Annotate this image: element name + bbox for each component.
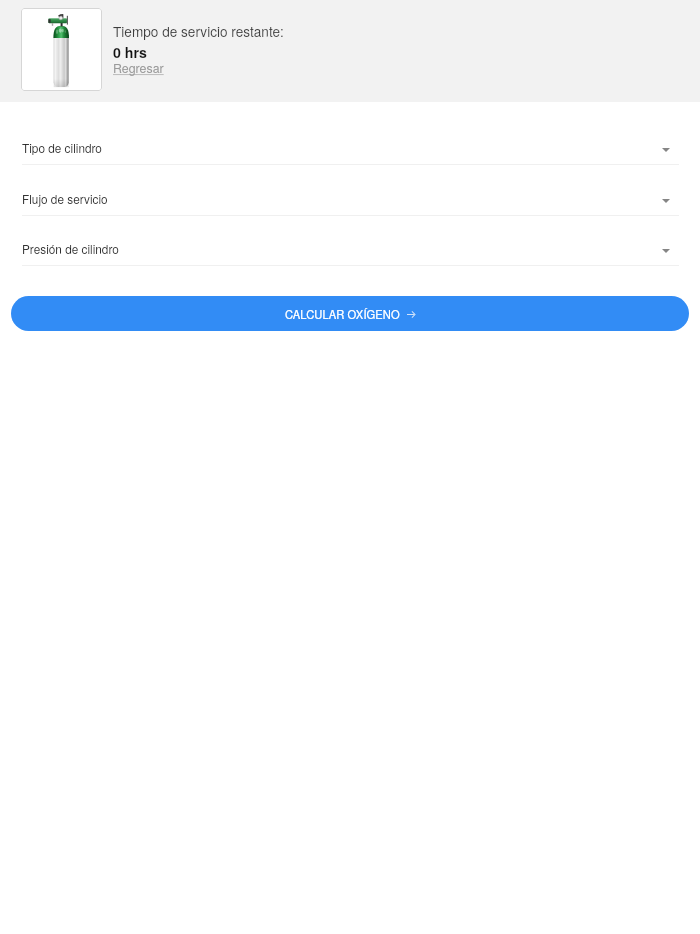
staticText: Tipo de cilindro [22, 139, 102, 156]
staticText: 0 hrs [113, 42, 147, 62]
button[interactable]: Presión de cilindro [0, 230, 700, 266]
other: Abrir selector Flujo de servicio [662, 199, 670, 203]
staticText: Regresar [113, 59, 164, 77]
button[interactable]: CALCULAR OXÍGENO [11, 296, 689, 331]
staticText: Flujo de servicio [22, 190, 108, 207]
button[interactable]: Regresar [113, 59, 164, 77]
button[interactable]: Tipo de cilindro [0, 129, 700, 165]
other: Abrir selector Tipo de cilindro [662, 148, 670, 152]
staticText: Presión de cilindro [22, 240, 119, 257]
staticText: Tiempo de servicio restante: [113, 21, 284, 40]
other: Abrir selector Presión de cilindro [662, 249, 670, 253]
button[interactable]: Flujo de servicio [0, 180, 700, 216]
other: Cilindro de oxígeno [21, 8, 102, 91]
staticText: CALCULAR OXÍGENO [285, 306, 400, 322]
